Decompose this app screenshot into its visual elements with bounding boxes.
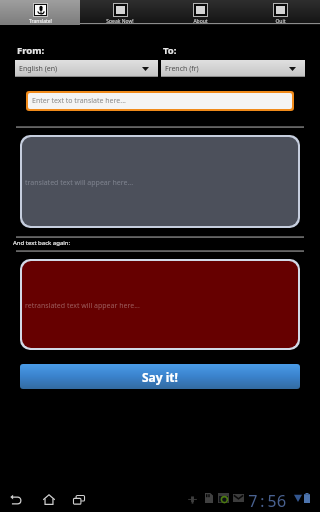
staticText: French (fr)	[165, 64, 199, 74]
button[interactable]: French (fr)	[161, 60, 305, 77]
button[interactable]: About	[160, 0, 240, 25]
button[interactable]: Home	[38, 488, 60, 510]
staticText: Quit	[275, 18, 286, 25]
staticText: translated text will appear here...	[25, 178, 134, 188]
button[interactable]: translated text will appear here...	[22, 137, 298, 226]
button[interactable]: retranslated text will appear here...	[22, 261, 298, 348]
staticText: Say it!	[142, 369, 178, 385]
staticText: Enter text to translate here...	[32, 96, 126, 106]
staticText: From:	[17, 44, 45, 57]
button[interactable]: Translate!	[0, 0, 80, 25]
staticText: English (en)	[19, 64, 58, 74]
staticText: About	[193, 18, 208, 25]
button[interactable]: Enter text to translate here...	[28, 93, 292, 109]
staticText: Translate!	[29, 18, 52, 25]
button[interactable]: Back	[5, 488, 27, 510]
button[interactable]: Speak Now!	[80, 0, 160, 25]
staticText: 7:56	[248, 490, 287, 512]
staticText: Speak Now!	[106, 18, 134, 25]
button[interactable]: Say it!	[20, 364, 300, 389]
button[interactable]: English (en)	[15, 60, 158, 77]
staticText: And text back again:	[13, 239, 71, 247]
button[interactable]: Quit	[240, 0, 320, 25]
button[interactable]: Recent apps	[68, 488, 90, 510]
staticText: retranslated text will appear here...	[25, 301, 140, 311]
staticText: To:	[163, 44, 177, 57]
